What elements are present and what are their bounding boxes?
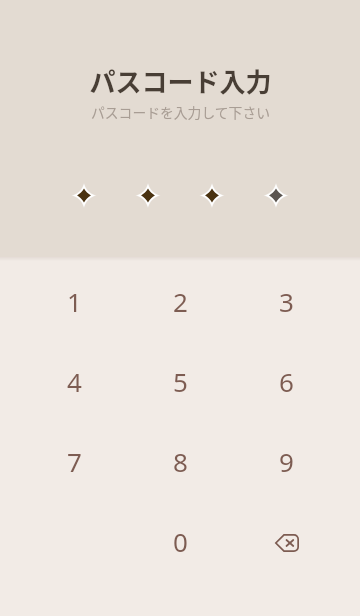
staticText: 5: [173, 364, 188, 399]
staticText: 3: [279, 284, 294, 319]
button[interactable]: 0: [127, 501, 233, 581]
staticText: 6: [279, 364, 294, 399]
staticText: 7: [67, 444, 82, 479]
button[interactable]: 5: [127, 341, 233, 421]
staticText: 4: [67, 364, 82, 399]
staticText: 1: [67, 284, 82, 319]
staticText: パスコードを入力して下さい: [91, 102, 270, 122]
button[interactable]: 7: [21, 421, 127, 501]
staticText: パスコード入力: [89, 62, 272, 100]
button[interactable]: 3: [233, 261, 339, 341]
button[interactable]: 1: [21, 261, 127, 341]
staticText: 0: [173, 524, 188, 559]
button[interactable]: Delete: [233, 501, 339, 581]
staticText: 2: [173, 284, 188, 319]
button[interactable]: 2: [127, 261, 233, 341]
staticText: 8: [173, 444, 188, 479]
button[interactable]: 4: [21, 341, 127, 421]
button[interactable]: 8: [127, 421, 233, 501]
button[interactable]: 9: [233, 421, 339, 501]
staticText: 9: [279, 444, 294, 479]
button[interactable]: 6: [233, 341, 339, 421]
